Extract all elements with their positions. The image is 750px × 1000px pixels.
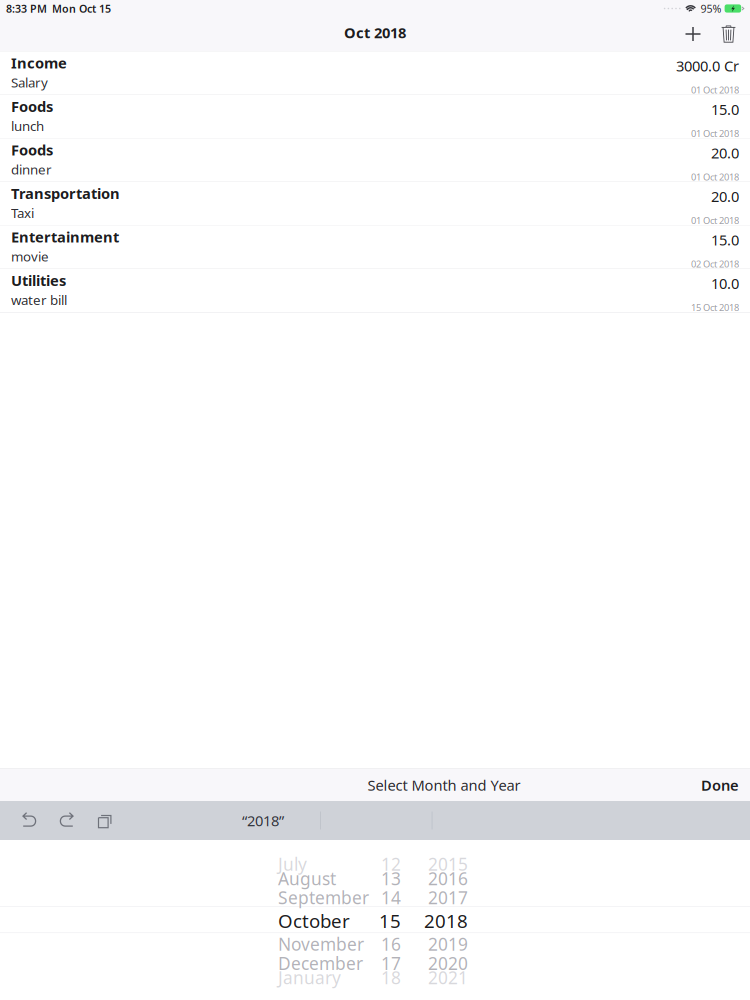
button[interactable]: Income — [0, 52, 750, 95]
staticText: Foods — [11, 96, 53, 116]
staticText: Done — [701, 775, 739, 795]
staticText: 20.0 — [711, 187, 739, 206]
staticText: Utilities — [11, 270, 66, 290]
staticText: 2021 — [428, 966, 468, 989]
button[interactable]: Utilities — [0, 269, 750, 313]
staticText: 15 — [379, 908, 401, 933]
staticText: 15.0 — [711, 100, 739, 119]
staticText: 01 Oct 2018 — [691, 171, 739, 183]
staticText: Mon Oct 15 — [52, 1, 111, 16]
staticText: 16 — [381, 932, 401, 955]
staticText: Entertainment — [11, 227, 119, 246]
staticText: 3000.0 Cr — [676, 56, 739, 76]
staticText: 12 — [381, 852, 401, 875]
staticText: 10.0 — [711, 274, 739, 293]
staticText: 14 — [381, 886, 401, 909]
staticText: 01 Oct 2018 — [691, 127, 739, 139]
staticText: 2019 — [428, 932, 468, 955]
staticText: Transportation — [11, 183, 120, 203]
staticText: Oct 2018 — [344, 23, 406, 42]
button[interactable]: Done — [688, 769, 750, 801]
button[interactable]: Add entry — [675, 17, 711, 51]
staticText: 18 — [381, 966, 401, 989]
staticText: dinner — [11, 160, 52, 178]
staticText: December — [278, 952, 363, 975]
staticText: 2020 — [428, 952, 468, 975]
staticText: November — [278, 932, 364, 955]
staticText: 2015 — [428, 852, 468, 875]
staticText: January — [278, 966, 341, 989]
button[interactable]: Redo — [48, 801, 86, 839]
button[interactable]: Entertainment — [0, 226, 750, 269]
staticText: July — [278, 852, 307, 875]
staticText: 95% — [701, 1, 722, 16]
staticText: 8:33 PM — [6, 1, 47, 16]
staticText: August — [278, 867, 336, 890]
staticText: 17 — [381, 952, 401, 975]
button[interactable]: Transportation — [0, 182, 750, 226]
staticText: 15 Oct 2018 — [691, 301, 739, 313]
staticText: 01 Oct 2018 — [691, 84, 739, 96]
staticText: Income — [11, 53, 67, 72]
staticText: 02 Oct 2018 — [691, 258, 739, 270]
staticText: 15.0 — [711, 230, 739, 250]
staticText: movie — [11, 247, 49, 265]
staticText: Taxi — [11, 204, 34, 222]
staticText: 2018 — [424, 908, 468, 933]
staticText: “2018” — [242, 811, 284, 830]
button[interactable]: Paste — [86, 801, 124, 839]
staticText: 13 — [381, 867, 401, 890]
button[interactable]: Undo — [10, 801, 48, 839]
button[interactable]: Foods — [0, 95, 750, 139]
staticText: lunch — [11, 117, 44, 135]
button[interactable]: Foods — [0, 139, 750, 182]
staticText: 2017 — [428, 886, 468, 909]
staticText: 01 Oct 2018 — [691, 214, 739, 226]
staticText: 20.0 — [711, 143, 739, 163]
staticText: Foods — [11, 140, 53, 159]
staticText: September — [278, 886, 369, 909]
staticText: 2016 — [428, 867, 468, 890]
staticText: Select Month and Year — [367, 775, 520, 795]
staticText: October — [278, 908, 350, 933]
staticText: Salary — [11, 73, 48, 91]
button[interactable]: “2018” — [206, 801, 320, 840]
button[interactable]: Delete — [711, 17, 746, 51]
staticText: water bill — [11, 291, 67, 309]
